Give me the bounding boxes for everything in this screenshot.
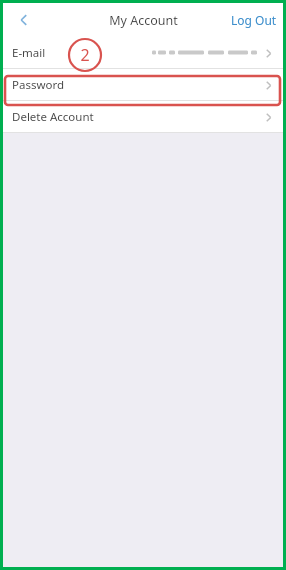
button[interactable]: Password <box>3 69 283 100</box>
button[interactable]: E-mail <box>3 37 283 68</box>
staticText: E-mail <box>12 45 46 61</box>
staticText: 2 <box>80 44 90 66</box>
button[interactable]: Delete Account <box>3 101 283 132</box>
button[interactable]: Log Out <box>225 7 283 33</box>
staticText: Delete Account <box>12 109 94 125</box>
staticText: Password <box>12 77 65 93</box>
staticText: Log Out <box>231 12 277 28</box>
button[interactable]: Back <box>11 7 37 33</box>
staticText: My Account <box>109 12 178 29</box>
